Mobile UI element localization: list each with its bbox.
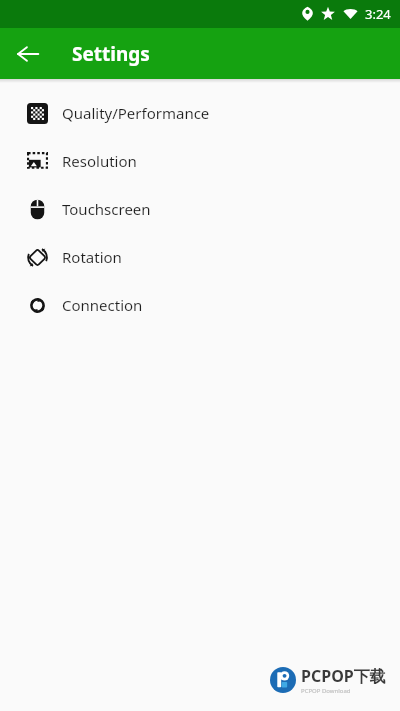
staticText: Settings [72,41,150,67]
staticText: 3:24 [365,5,391,23]
staticText: Quality/Performance [62,103,210,123]
staticText: PCPOP Download [301,687,351,695]
button[interactable]: Back [6,32,50,76]
staticText: Connection [62,295,143,315]
button[interactable]: Rotation [0,233,400,281]
button[interactable]: Connection [0,281,400,329]
button[interactable]: Resolution [0,137,400,185]
staticText: Rotation [62,247,122,267]
staticText: PCPOP下载 [301,665,386,687]
button[interactable]: Quality/Performance [0,89,400,137]
button[interactable]: Touchscreen [0,185,400,233]
staticText: Resolution [62,151,137,171]
staticText: Touchscreen [62,199,151,219]
